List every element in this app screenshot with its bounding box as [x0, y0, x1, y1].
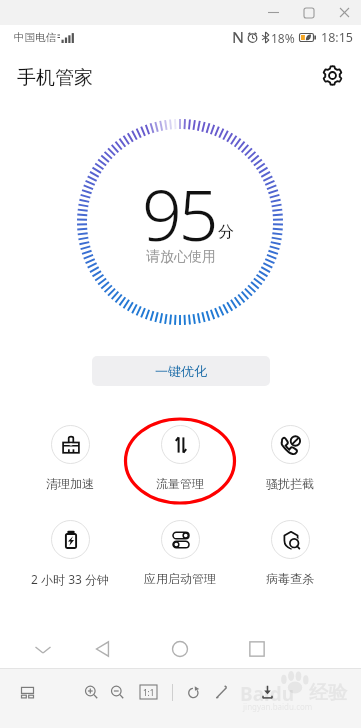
staticText: 2 小时 33 分钟 [31, 571, 109, 587]
button[interactable]: Zoom in [79, 680, 103, 704]
staticText: 清理加速 [46, 476, 94, 491]
staticText: Baidu [240, 681, 295, 707]
button[interactable]: 骚扰拦截 [266, 418, 314, 491]
staticText: 1:1 [143, 687, 155, 698]
button[interactable]: 流量管理 [156, 418, 204, 491]
button[interactable]: Recents [240, 632, 274, 666]
staticText: 中国电信 [14, 31, 56, 44]
staticText: 18:15 [321, 29, 353, 46]
staticText: 请放心使用 [146, 248, 216, 266]
button[interactable]: 应用启动管理 [144, 513, 216, 586]
staticText: 分 [218, 222, 234, 242]
staticText: 应用启动管理 [144, 571, 216, 586]
button[interactable]: 清理加速 [46, 418, 94, 491]
button[interactable]: Download [255, 680, 279, 704]
button[interactable]: Rotate [181, 680, 205, 704]
button[interactable]: Home [163, 632, 197, 666]
staticText: 一键优化 [155, 363, 207, 379]
staticText: 骚扰拦截 [266, 476, 314, 491]
button[interactable]: Maximize [291, 0, 327, 25]
staticText: 流量管理 [156, 476, 204, 491]
button[interactable]: 病毒查杀 [266, 513, 314, 586]
staticText: jingyan.baidu.com [243, 701, 313, 712]
button[interactable]: Close [327, 0, 361, 25]
button[interactable]: Minimize [255, 0, 291, 25]
button[interactable]: Collapse [26, 632, 60, 666]
staticText: 手机管家 [17, 66, 93, 90]
staticText: 经验 [309, 681, 347, 705]
button[interactable]: Settings [315, 58, 349, 92]
staticText: 95 [142, 166, 215, 261]
button[interactable]: Back [86, 632, 120, 666]
staticText: 18% [271, 30, 295, 46]
button[interactable]: 一键优化 [92, 356, 270, 386]
button[interactable]: Edit [209, 680, 233, 704]
button[interactable]: Actual size [135, 681, 161, 703]
staticText: 病毒查杀 [266, 571, 314, 586]
button[interactable]: Zoom out [105, 680, 129, 704]
button[interactable]: 2 小时 33 分钟 [31, 513, 109, 587]
button[interactable]: Layout [15, 680, 39, 704]
